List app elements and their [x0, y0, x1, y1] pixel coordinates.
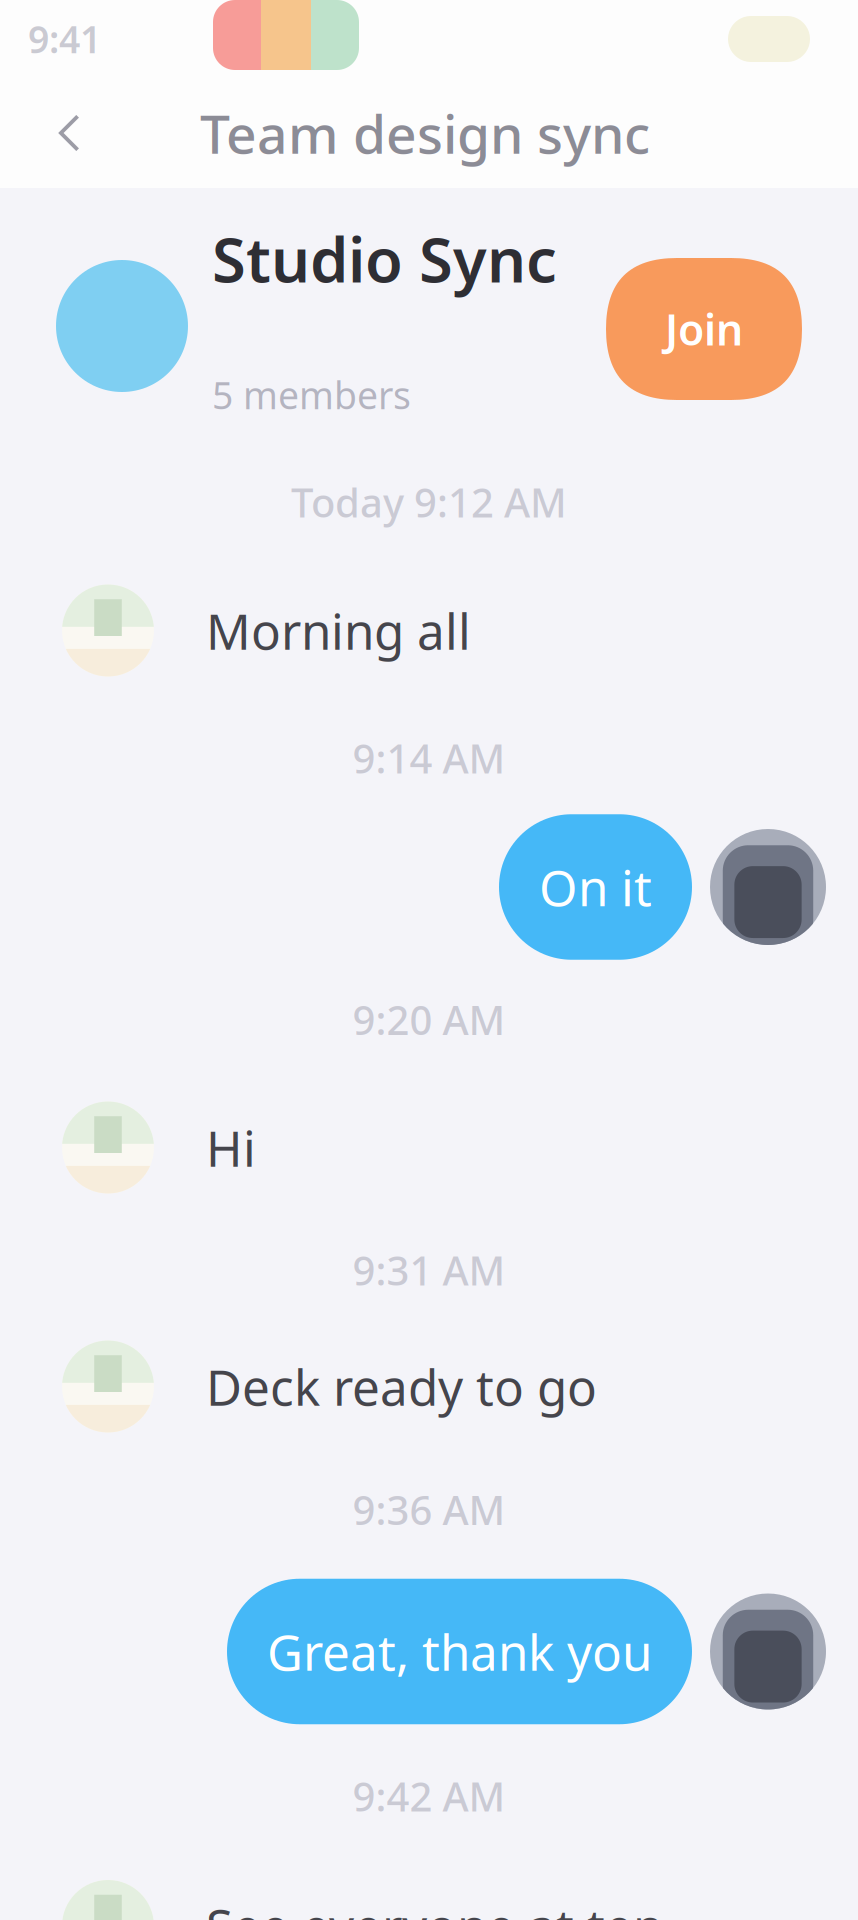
staticText: 5 members: [212, 370, 411, 420]
staticText: Today 9:12 AM: [291, 475, 567, 528]
staticText: 9:36 AM: [352, 1483, 505, 1536]
staticText: Studio Sync: [212, 218, 557, 299]
staticText: Morning all: [206, 598, 471, 663]
button[interactable]: Back: [40, 95, 100, 171]
staticText: 9:31 AM: [352, 1243, 505, 1296]
staticText: On it: [539, 854, 652, 920]
button[interactable]: Join: [606, 258, 802, 400]
staticText: 9:20 AM: [352, 993, 505, 1046]
staticText: Team design sync: [200, 98, 650, 168]
staticText: Great, thank you: [267, 1619, 652, 1684]
staticText: 9:14 AM: [352, 731, 505, 784]
staticText: See everyone at ten: [206, 1893, 663, 1920]
staticText: Join: [665, 301, 743, 357]
staticText: 9:42 AM: [352, 1769, 505, 1822]
staticText: Hi: [206, 1115, 256, 1180]
staticText: 9:41: [28, 14, 101, 64]
staticText: Deck ready to go: [206, 1354, 597, 1419]
